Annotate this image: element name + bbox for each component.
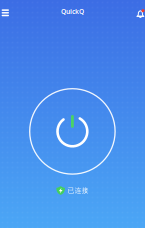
staticText: QuickQ bbox=[61, 7, 84, 16]
button[interactable]: Connect bbox=[28, 87, 116, 175]
staticText: 已连接 bbox=[68, 186, 89, 195]
button[interactable]: Menu bbox=[0, 5, 13, 21]
button[interactable]: Notifications bbox=[132, 6, 145, 22]
